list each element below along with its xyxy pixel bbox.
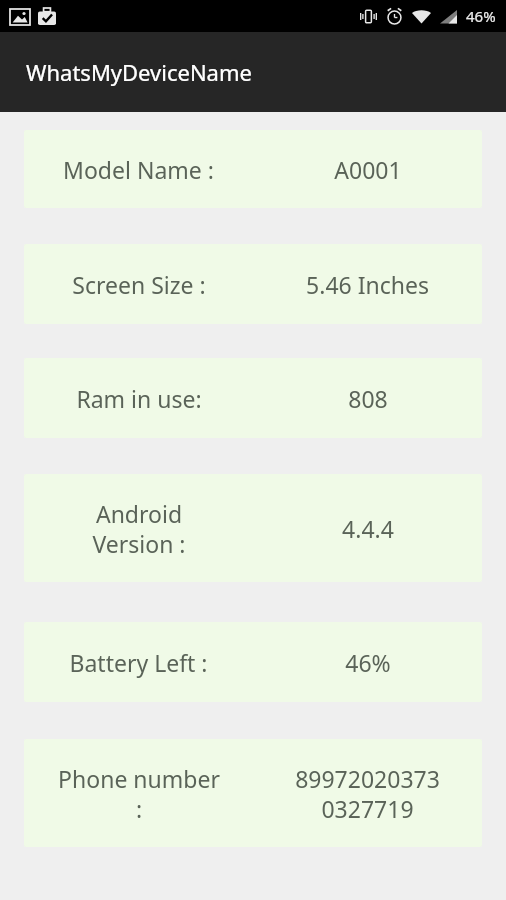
button[interactable]: Phone number : xyxy=(24,739,482,847)
button[interactable]: Battery Left : xyxy=(24,622,482,702)
other: Vibrate mode xyxy=(360,9,377,24)
button[interactable]: Model Name : xyxy=(24,130,482,208)
staticText: Screen Size : xyxy=(72,269,206,300)
other: Screenshot xyxy=(10,9,30,25)
other: Mobile signal xyxy=(440,9,457,24)
other: Alarm set xyxy=(386,8,403,25)
staticText: Phone number : xyxy=(58,763,220,824)
button[interactable]: Screen Size : xyxy=(24,244,482,324)
staticText: Android Version : xyxy=(92,498,186,559)
staticText: Model Name : xyxy=(63,154,214,185)
button[interactable]: Android Version : xyxy=(24,474,482,582)
staticText: Battery Left : xyxy=(69,647,208,678)
staticText: 89972020373 0327719 xyxy=(295,763,440,824)
staticText: Ram in use: xyxy=(76,383,202,414)
button[interactable]: Ram in use: xyxy=(24,358,482,438)
other: Wi-Fi signal xyxy=(412,9,431,24)
staticText: 46% xyxy=(345,647,391,678)
staticText: 5.46 Inches xyxy=(306,269,429,300)
other: Work profile xyxy=(38,8,56,25)
staticText: 46% xyxy=(466,6,496,26)
staticText: WhatsMyDeviceName xyxy=(26,57,252,87)
staticText: 4.4.4 xyxy=(342,513,394,544)
staticText: A0001 xyxy=(334,154,402,185)
staticText: 808 xyxy=(348,383,388,414)
